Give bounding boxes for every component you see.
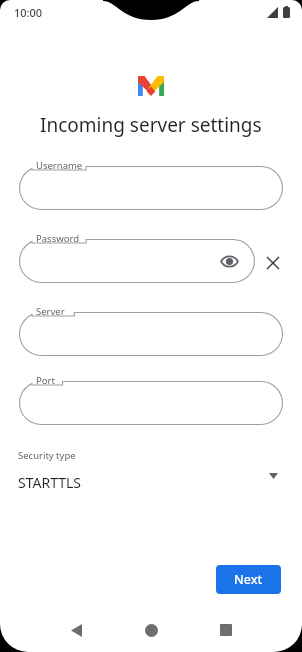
staticText: Password	[36, 232, 79, 245]
staticText: Security type	[18, 449, 76, 462]
staticText: Username	[36, 159, 83, 172]
button[interactable]: Show password	[217, 249, 241, 273]
button[interactable]: Username	[19, 166, 283, 210]
button[interactable]: Port	[19, 381, 283, 425]
button[interactable]: Back	[60, 614, 92, 646]
button[interactable]: Security type	[14, 447, 288, 497]
button[interactable]: Next	[216, 565, 281, 594]
button[interactable]: Home	[135, 614, 167, 646]
button[interactable]: Password	[19, 239, 255, 283]
staticText: Incoming server settings	[40, 112, 262, 138]
staticText: STARTTLS	[18, 473, 82, 492]
staticText: Next	[234, 571, 263, 588]
button[interactable]: Server	[19, 312, 283, 356]
staticText: Port	[36, 374, 55, 387]
staticText: 10:00	[14, 5, 43, 20]
button[interactable]: Recent apps	[210, 614, 242, 646]
staticText: Server	[36, 305, 65, 318]
button[interactable]: Clear	[262, 252, 284, 274]
